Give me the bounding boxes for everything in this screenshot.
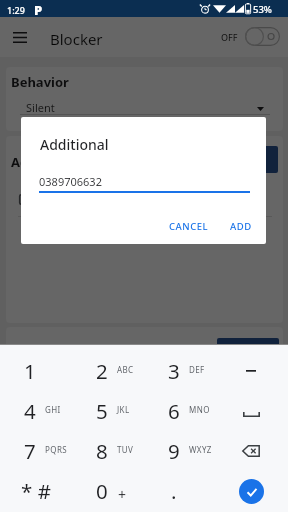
button[interactable]: Space xyxy=(216,391,288,431)
button[interactable] xyxy=(238,146,278,173)
staticText: Additional xyxy=(11,153,79,171)
staticText: 53% xyxy=(253,3,272,16)
button[interactable]: 8 xyxy=(72,431,144,471)
staticText: GHI xyxy=(45,404,61,415)
staticText: JKL xyxy=(117,404,130,415)
button[interactable]: 6 xyxy=(144,391,216,431)
staticText: Additional xyxy=(40,135,109,154)
button[interactable]: Toggle blocker xyxy=(245,27,280,46)
staticText: MNO xyxy=(189,404,210,415)
button[interactable]: 0 xyxy=(72,471,144,511)
staticText: * # xyxy=(21,477,51,505)
staticText: 4 xyxy=(24,397,36,425)
staticText: Silent xyxy=(26,100,55,115)
staticText: 0 xyxy=(96,477,108,505)
staticText: 9 xyxy=(168,437,180,465)
staticText: ADD xyxy=(230,220,252,233)
staticText: Behavior xyxy=(11,73,69,91)
button[interactable]: 5 xyxy=(72,391,144,431)
staticText: P xyxy=(34,1,43,18)
button[interactable]: Backspace xyxy=(216,431,288,471)
staticText: . xyxy=(171,477,177,505)
button[interactable]: 3 xyxy=(144,351,216,391)
staticText: ABC xyxy=(117,364,134,375)
staticText: 6 xyxy=(168,397,180,425)
staticText: WXYZ xyxy=(189,444,212,455)
button[interactable]: * # xyxy=(0,471,72,511)
staticText: + xyxy=(118,485,127,504)
staticText: Blocker xyxy=(50,29,103,49)
button[interactable]: 1 xyxy=(0,351,72,391)
staticText: 7 xyxy=(24,437,36,465)
staticText: DEF xyxy=(189,364,205,375)
staticText: 0389706632 xyxy=(39,174,102,189)
staticText: 5 xyxy=(96,397,108,425)
staticText: 8 xyxy=(96,437,108,465)
button[interactable]: Dash xyxy=(216,351,288,391)
staticText: 1:29 xyxy=(7,4,25,16)
staticText: 2 xyxy=(96,357,108,385)
button[interactable]: 2 xyxy=(72,351,144,391)
staticText: PQRS xyxy=(45,444,68,455)
button[interactable]: CANCEL xyxy=(165,214,213,239)
button[interactable]: . xyxy=(144,471,216,511)
staticText: TUV xyxy=(117,444,134,455)
button[interactable]: 4 xyxy=(0,391,72,431)
button[interactable]: 7 xyxy=(0,431,72,471)
button[interactable]: ADD xyxy=(223,214,258,239)
button[interactable]: Confirm xyxy=(216,471,288,511)
other: Menu xyxy=(13,32,27,43)
button[interactable] xyxy=(217,338,279,362)
button[interactable]: 9 xyxy=(144,431,216,471)
staticText: CANCEL xyxy=(169,220,209,233)
staticText: OFF xyxy=(221,31,238,43)
staticText: 1 xyxy=(24,357,36,385)
staticText: 3 xyxy=(168,357,180,385)
